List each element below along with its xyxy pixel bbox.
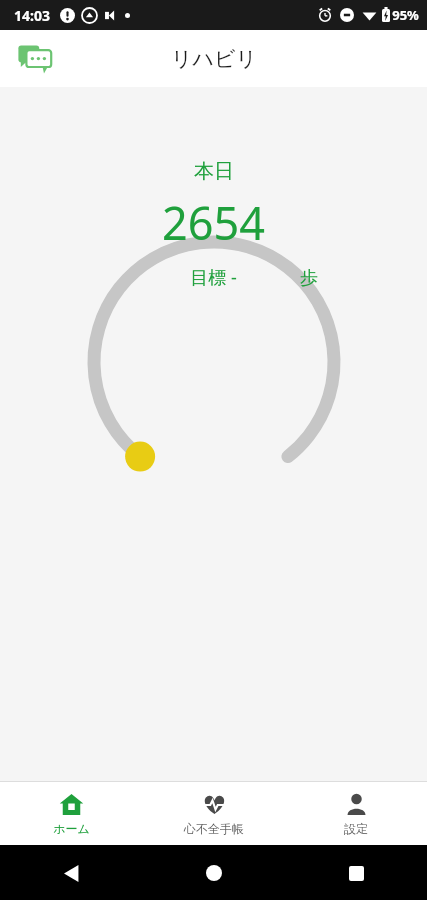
button[interactable]: ホーム — [192, 851, 236, 895]
staticText: 歩 — [300, 267, 318, 290]
staticText: 2654 — [162, 192, 265, 253]
staticText: 本日 — [194, 159, 234, 184]
staticText: 設定 — [344, 821, 368, 836]
staticText: リハビリ — [171, 46, 257, 72]
button[interactable]: 心不全手帳 — [143, 786, 285, 842]
button[interactable]: 設定 — [285, 786, 427, 842]
button[interactable]: 最近のアプリ — [334, 851, 378, 895]
staticText: 95% — [392, 6, 419, 24]
button[interactable]: チャット — [12, 35, 60, 83]
staticText: 14:03 — [14, 6, 50, 25]
button[interactable]: ホーム — [0, 786, 143, 842]
staticText: 心不全手帳 — [184, 821, 244, 836]
staticText: 目標 - — [190, 265, 237, 290]
button[interactable]: 戻る — [50, 851, 94, 895]
staticText: ホーム — [53, 821, 90, 836]
